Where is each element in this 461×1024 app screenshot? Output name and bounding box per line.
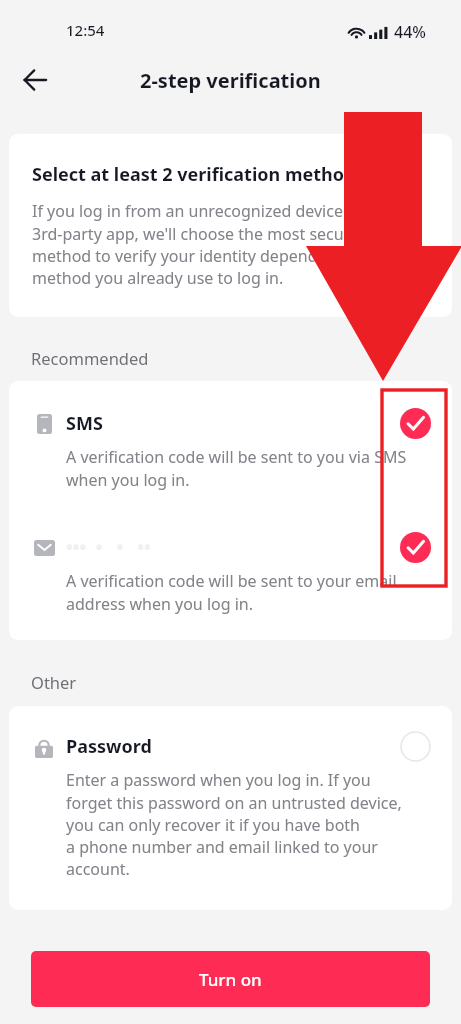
staticText: SMS <box>66 411 400 436</box>
staticText: Other <box>31 671 77 693</box>
button[interactable]: SMS <box>9 381 452 490</box>
button[interactable]: Password <box>9 706 452 879</box>
staticText: Turn on <box>199 968 262 991</box>
button[interactable]: ••• • • •• <box>9 490 452 614</box>
staticText: Enter a password when you log in. If you… <box>66 769 402 879</box>
button[interactable]: Back <box>12 57 58 103</box>
staticText: Select at least 2 verification methods <box>32 162 365 187</box>
staticText: Password <box>66 734 400 759</box>
staticText: 2-step verification <box>140 67 321 94</box>
staticText: A verification code will be sent to your… <box>66 570 428 614</box>
staticText: ••• • • •• <box>66 535 400 560</box>
staticText: If you log in from an unrecognized devic… <box>32 200 394 288</box>
button[interactable]: Turn on <box>31 951 430 1007</box>
staticText: 44% <box>394 21 426 43</box>
staticText: 12:54 <box>66 20 105 40</box>
staticText: Recommended <box>31 347 149 369</box>
staticText: A verification code will be sent to you … <box>66 446 428 490</box>
